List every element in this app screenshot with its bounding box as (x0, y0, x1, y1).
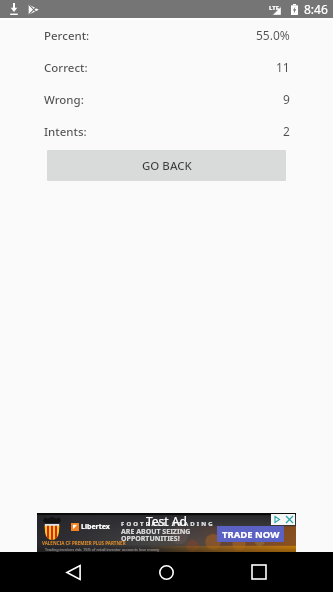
button[interactable]: Wrong: (0, 84, 333, 116)
button[interactable]: Percent: (0, 20, 333, 52)
staticText: LTE (269, 4, 280, 12)
staticText: 8:46 (304, 1, 328, 17)
staticText: TRADE NOW (222, 528, 280, 541)
staticText: VALENCIA CF PREMIER PLUS PARTNER (42, 540, 126, 546)
staticText: Percent: (44, 28, 90, 44)
staticText: 2 (283, 123, 290, 139)
staticText: OPPORTUNITIES! (121, 534, 180, 544)
button[interactable]: Close ad (283, 514, 295, 525)
button[interactable]: Home (146, 552, 186, 592)
button[interactable]: GO BACK (47, 150, 286, 181)
button[interactable]: TRADE NOW (217, 526, 284, 542)
button[interactable]: Ad choices (271, 514, 283, 525)
staticText: 9 (283, 91, 290, 107)
button[interactable]: Correct: (0, 52, 333, 84)
button[interactable]: Advertisement (37, 513, 296, 552)
button[interactable]: Back (53, 552, 93, 592)
staticText: Test Ad (146, 513, 187, 529)
button[interactable]: Intents: (0, 116, 333, 148)
staticText: FOOTBALL TRADING (121, 520, 215, 528)
staticText: 55.0% (256, 27, 290, 43)
staticText: Intents: (44, 124, 87, 140)
staticText: GO BACK (142, 158, 192, 174)
staticText: ARE ABOUT SEIZING (121, 527, 191, 537)
staticText: Wrong: (44, 92, 84, 108)
staticText: Libertex (81, 522, 110, 532)
staticText: Correct: (44, 60, 88, 76)
button[interactable]: Recents (239, 552, 279, 592)
staticText: 11 (276, 59, 290, 75)
staticText: Trading involves risk. 76% of retail inv… (45, 547, 160, 552)
